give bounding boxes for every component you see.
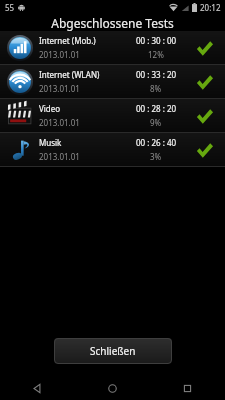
other: Abgeschlossen bbox=[191, 35, 217, 61]
staticText: 12% bbox=[148, 49, 164, 60]
staticText: Video bbox=[39, 103, 61, 114]
button[interactable]: Schließen bbox=[54, 338, 172, 364]
button[interactable]: Video bbox=[0, 99, 225, 132]
staticText: 20:12 bbox=[200, 2, 221, 13]
staticText: 2013.01.01 bbox=[39, 151, 80, 162]
button[interactable]: Recent apps bbox=[150, 376, 225, 400]
staticText: 8% bbox=[150, 83, 162, 94]
other: Abgeschlossen bbox=[191, 103, 217, 129]
staticText: 00 : 26 : 40 bbox=[136, 137, 177, 148]
staticText: Abgeschlossene Tests bbox=[51, 15, 174, 31]
staticText: 55 bbox=[5, 2, 15, 13]
other: Abgeschlossen bbox=[191, 137, 217, 163]
staticText: Internet (Mob.) bbox=[39, 35, 96, 46]
button[interactable]: Back bbox=[0, 376, 75, 400]
staticText: 00 : 33 : 20 bbox=[136, 69, 177, 80]
staticText: 00 : 28 : 20 bbox=[136, 103, 177, 114]
button[interactable]: Internet (WLAN) bbox=[0, 65, 225, 98]
staticText: Schließen bbox=[90, 344, 136, 358]
staticText: 2013.01.01 bbox=[39, 117, 80, 128]
button[interactable]: Internet (Mob.) bbox=[0, 31, 225, 64]
other: Abgeschlossen bbox=[191, 69, 217, 95]
staticText: 3% bbox=[150, 151, 162, 162]
staticText: Internet (WLAN) bbox=[39, 69, 100, 80]
staticText: 2013.01.01 bbox=[39, 83, 80, 94]
staticText: Musik bbox=[39, 137, 62, 148]
staticText: 00 : 30 : 00 bbox=[136, 35, 177, 46]
staticText: 2013.01.01 bbox=[39, 49, 80, 60]
staticText: 9% bbox=[150, 117, 162, 128]
button[interactable]: Home bbox=[75, 376, 150, 400]
button[interactable]: Musik bbox=[0, 133, 225, 166]
